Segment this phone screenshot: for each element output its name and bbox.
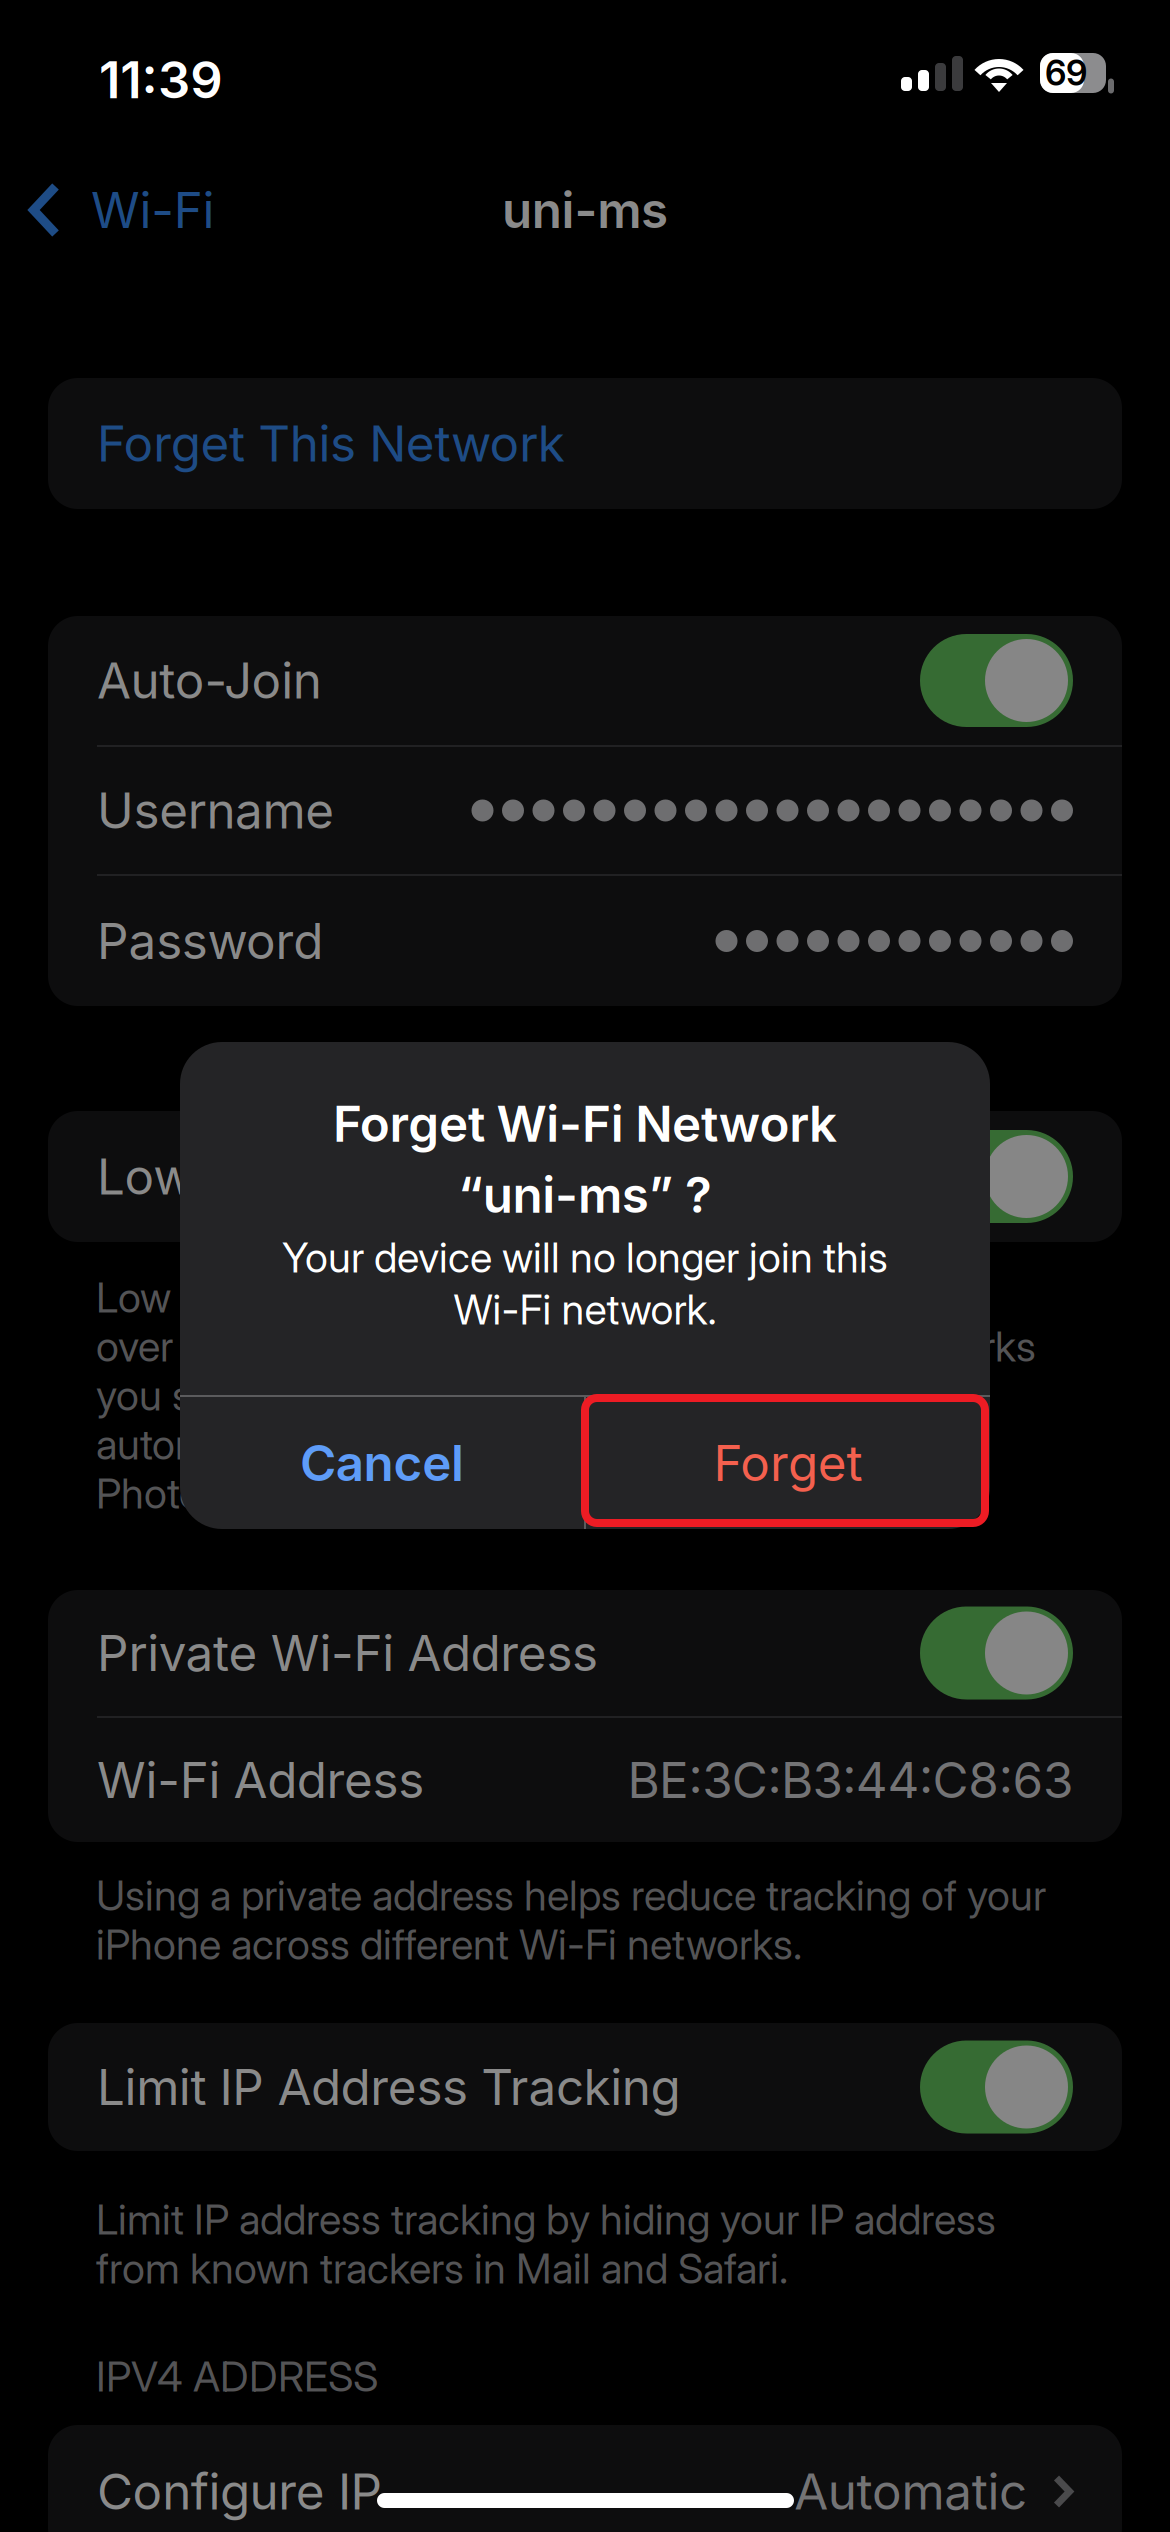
staticText: Cancel bbox=[300, 1434, 464, 1492]
staticText: Password bbox=[97, 912, 323, 970]
staticText: Your device will no longer join this bbox=[282, 1233, 888, 1282]
button[interactable]: Configure IP bbox=[48, 2425, 1122, 2532]
staticText: Limit IP address tracking by hiding your… bbox=[96, 2195, 996, 2244]
staticText: BE:3C:B3:44:C8:63 bbox=[627, 1751, 1073, 1809]
staticText: you select. When Low Data Mode is turned… bbox=[96, 1371, 930, 1420]
staticText: iPhone across different Wi-Fi networks. bbox=[96, 1920, 802, 1969]
staticText: Forget bbox=[713, 1434, 862, 1492]
staticText: Low Data Mode bbox=[97, 1147, 459, 1206]
staticText: Username bbox=[97, 781, 334, 840]
staticText: Wi-Fi Address bbox=[97, 1751, 424, 1809]
staticText: Configure IP bbox=[97, 2462, 383, 2521]
staticText: uni-ms bbox=[502, 181, 668, 239]
staticText: 69 bbox=[1045, 53, 1087, 93]
staticText: Low Data Mode helps reduce data usage bbox=[96, 1273, 828, 1322]
staticText: Wi-Fi network. bbox=[453, 1285, 716, 1334]
staticText: Private Wi-Fi Address bbox=[97, 1624, 598, 1682]
staticText: automatic updates and background tasks, … bbox=[96, 1420, 915, 1469]
button[interactable]: Wi-Fi bbox=[0, 145, 238, 275]
staticText: Forget Wi-Fi Network bbox=[333, 1095, 837, 1153]
staticText: Limit IP Address Tracking bbox=[97, 2058, 680, 2116]
staticText: “uni-ms” ? bbox=[458, 1166, 712, 1224]
button[interactable]: Forget bbox=[586, 1397, 990, 1529]
staticText: Automatic bbox=[794, 2462, 1027, 2521]
staticText: from known trackers in Mail and Safari. bbox=[96, 2244, 788, 2293]
staticText: Wi-Fi bbox=[91, 181, 214, 239]
staticText: 11:39 bbox=[99, 50, 222, 110]
button[interactable]: Forget This Network bbox=[48, 378, 1122, 509]
staticText: IPV4 ADDRESS bbox=[96, 2352, 378, 2401]
button[interactable]: Cancel bbox=[180, 1397, 584, 1529]
staticText: over your cellular network or specific W… bbox=[96, 1322, 1036, 1371]
staticText: Using a private address helps reduce tra… bbox=[96, 1871, 1046, 1920]
staticText: Auto-Join bbox=[97, 651, 322, 710]
staticText: Forget This Network bbox=[97, 414, 565, 473]
staticText: Photos syncing, are paused. bbox=[96, 1469, 599, 1518]
